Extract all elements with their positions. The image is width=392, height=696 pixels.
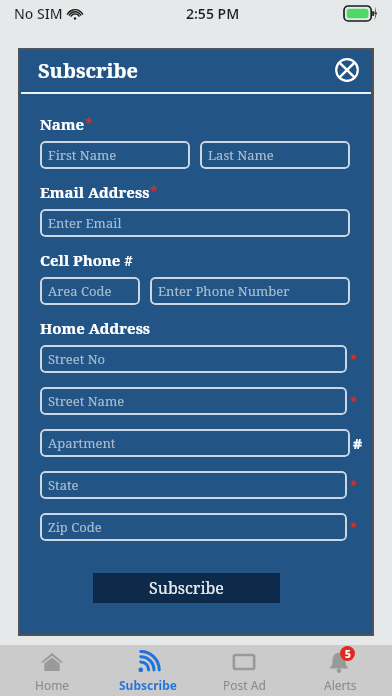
button[interactable]: Subscribe (93, 573, 280, 603)
staticText: * (350, 518, 358, 536)
button[interactable]: Post Ad (200, 645, 288, 696)
staticText: Subscribe (119, 677, 177, 693)
button[interactable]: State (40, 471, 347, 499)
staticText: 2:55 PM (186, 4, 240, 23)
staticText: Zip Code (48, 518, 102, 536)
staticText: Name (40, 114, 85, 134)
staticText: Home (35, 677, 70, 693)
button[interactable]: Enter Phone Number (150, 277, 350, 305)
button[interactable]: Close (332, 55, 362, 85)
button[interactable]: Street Name (40, 387, 347, 415)
staticText: Apartment (48, 434, 116, 452)
button[interactable]: Home (8, 645, 96, 696)
staticText: 5 (345, 647, 351, 661)
staticText: # (353, 434, 363, 453)
staticText: Area Code (48, 282, 112, 300)
staticText: * (150, 181, 158, 200)
staticText: Post Ad (223, 677, 266, 693)
staticText: * (350, 392, 358, 410)
staticText: Email Address (40, 182, 150, 202)
staticText: Subscribe (149, 577, 224, 599)
button[interactable]: Street No (40, 345, 347, 373)
button[interactable]: Area Code (40, 277, 140, 305)
staticText: Subscribe (38, 57, 138, 84)
button[interactable]: Enter Email (40, 209, 350, 237)
button[interactable]: 5 (296, 645, 384, 696)
staticText: Last Name (208, 146, 274, 164)
staticText: Alerts (324, 677, 357, 693)
staticText: Enter Phone Number (158, 282, 290, 300)
staticText: No SIM (14, 4, 63, 23)
staticText: * (85, 113, 93, 132)
staticText: Street Name (48, 392, 125, 410)
staticText: * (350, 476, 358, 494)
staticText: Enter Email (48, 214, 122, 232)
staticText: Cell Phone # (40, 250, 133, 270)
staticText: Street No (48, 350, 106, 368)
button[interactable]: Zip Code (40, 513, 347, 541)
staticText: Home Address (40, 318, 151, 338)
button[interactable]: First Name (40, 141, 190, 169)
button[interactable]: Last Name (200, 141, 350, 169)
button[interactable]: Apartment (40, 429, 350, 457)
staticText: State (48, 476, 79, 494)
button[interactable]: Subscribe (104, 645, 192, 696)
staticText: First Name (48, 146, 117, 164)
staticText: * (350, 350, 358, 368)
